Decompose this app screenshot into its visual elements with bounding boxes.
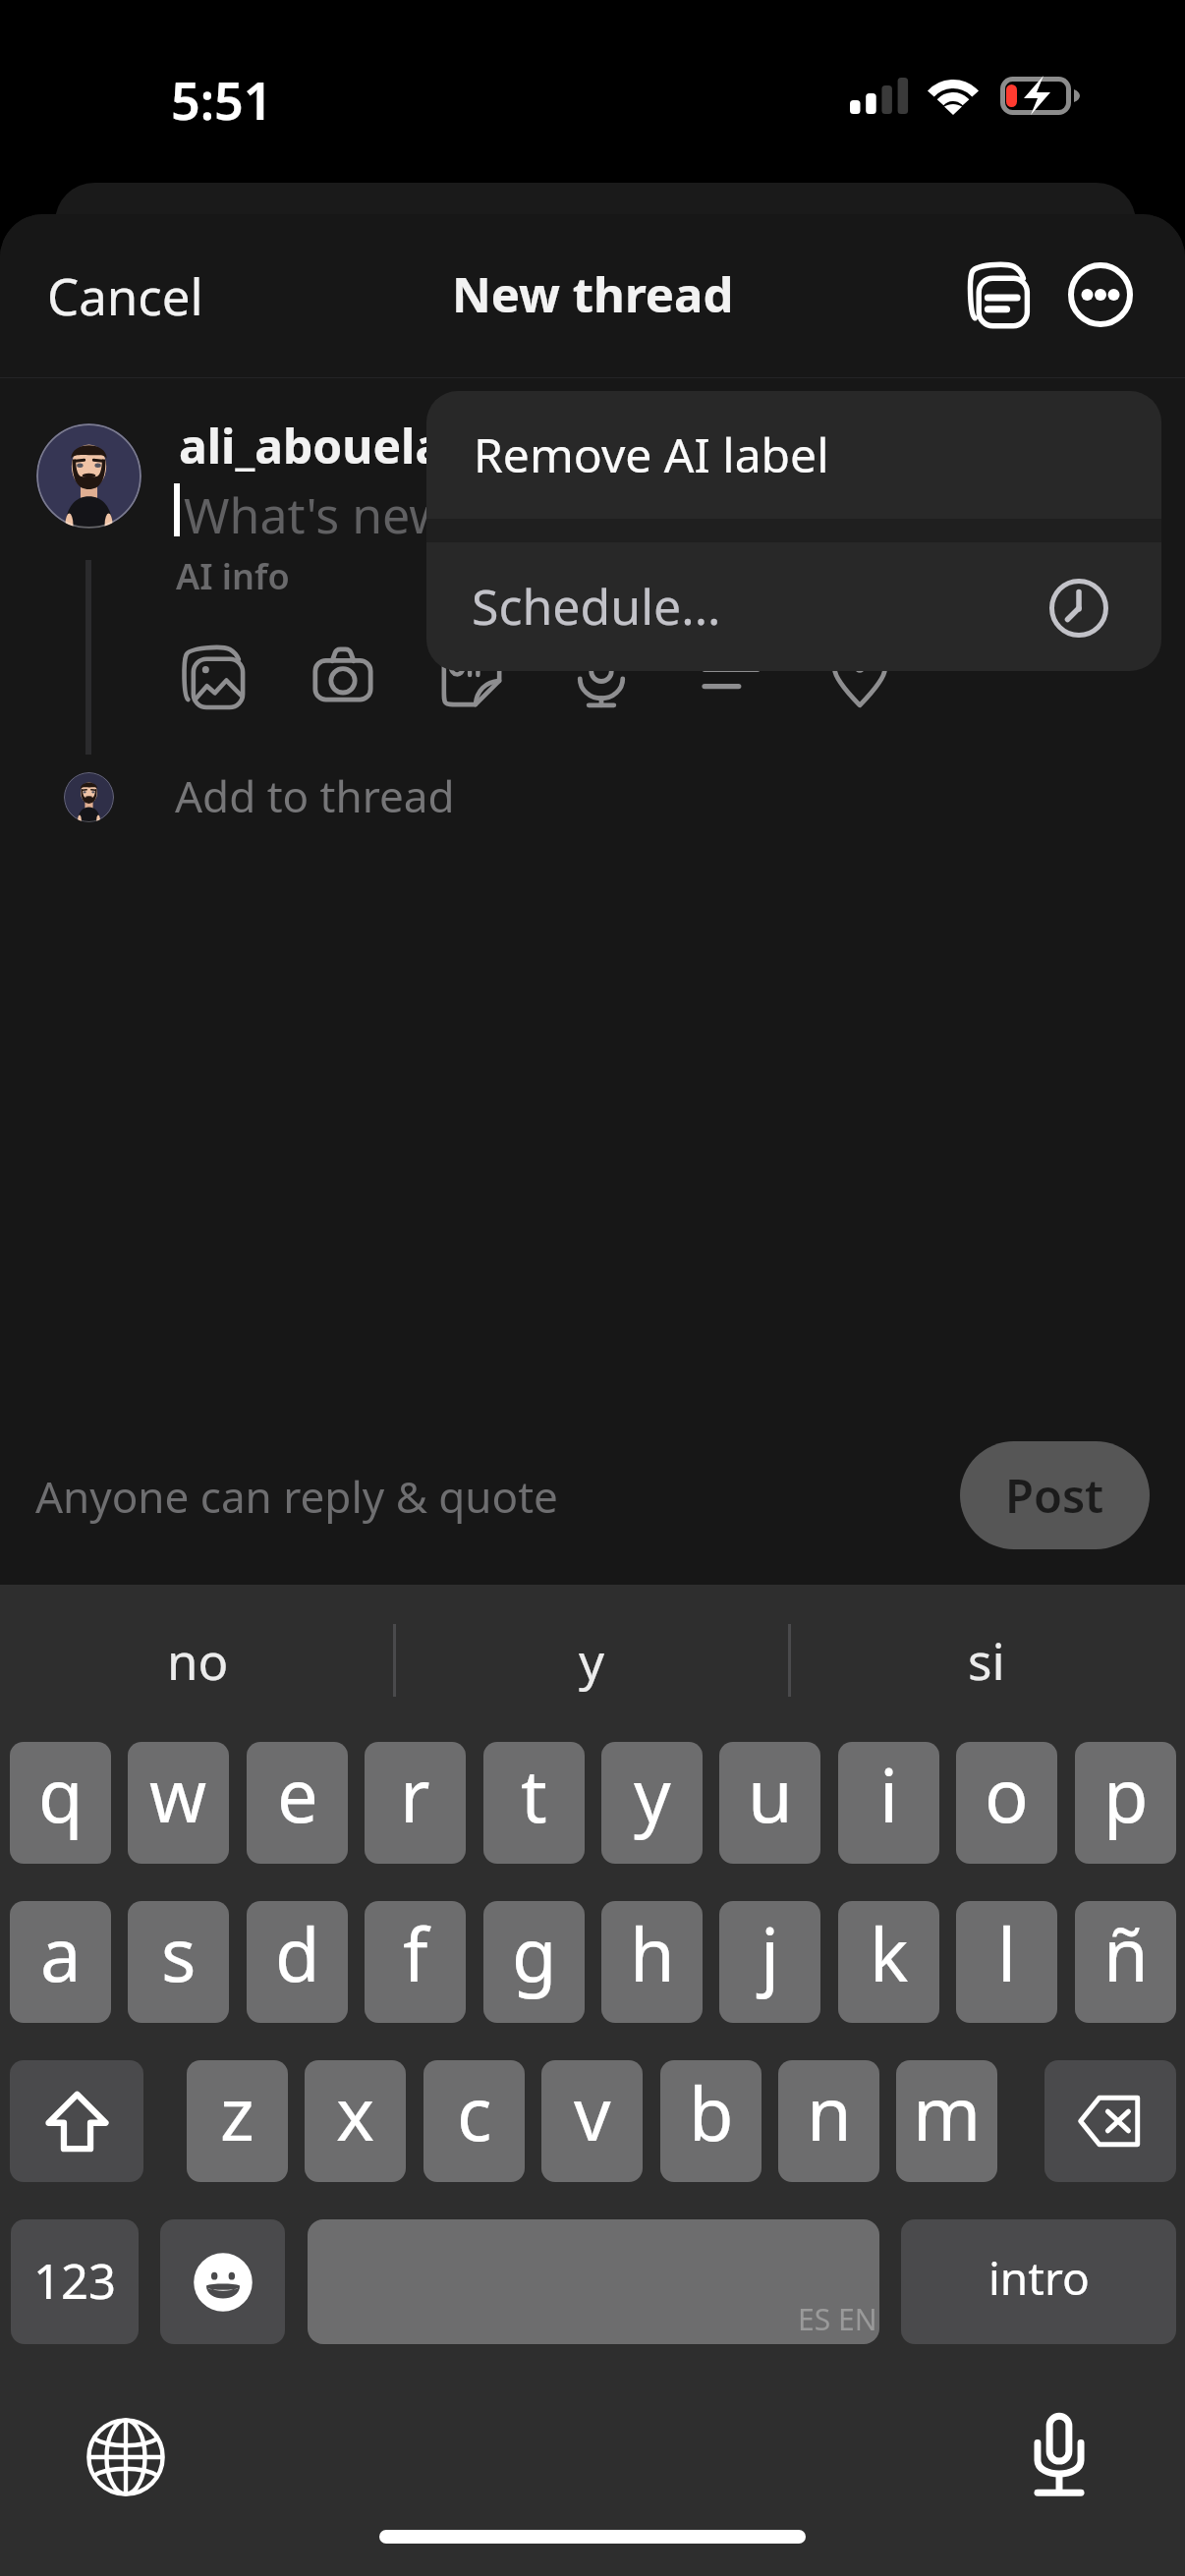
staticText: a <box>40 1904 82 2003</box>
staticText: t <box>521 1745 547 1844</box>
staticText: intro <box>988 2247 1090 2309</box>
button[interactable]: j <box>719 1901 820 2023</box>
button[interactable]: i <box>838 1742 939 1864</box>
button[interactable]: p <box>1075 1742 1176 1864</box>
staticText: 5:51 <box>171 65 273 135</box>
staticText: 123 <box>33 2248 117 2314</box>
staticText: y <box>634 1745 671 1844</box>
button[interactable]: w <box>128 1742 229 1864</box>
button[interactable]: intro <box>901 2219 1176 2344</box>
staticText: Schedule... <box>472 573 721 640</box>
staticText: j <box>761 1904 780 2003</box>
staticText: What's new? <box>184 481 471 548</box>
staticText: f <box>403 1904 428 2003</box>
button[interactable]: Add to thread <box>175 766 455 825</box>
staticText: Cancel <box>47 261 203 329</box>
staticText: n <box>807 2063 852 2162</box>
button[interactable]: a <box>10 1901 111 2023</box>
button[interactable]: f <box>365 1901 466 2023</box>
staticText: Add to thread <box>175 766 455 825</box>
staticText: si <box>968 1626 1005 1694</box>
button[interactable]: t <box>483 1742 585 1864</box>
staticText: Post <box>1005 1464 1104 1527</box>
button[interactable]: b <box>660 2060 762 2182</box>
staticText: m <box>913 2063 982 2162</box>
button[interactable]: Dictate <box>1016 2411 1102 2497</box>
button[interactable]: AI info <box>176 552 290 600</box>
button[interactable]: x <box>305 2060 406 2182</box>
button[interactable]: e <box>247 1742 348 1864</box>
button[interactable]: c <box>423 2060 525 2182</box>
staticText: x <box>336 2063 375 2162</box>
button[interactable]: y <box>601 1742 703 1864</box>
button[interactable]: d <box>247 1901 348 2023</box>
staticText: ñ <box>1103 1904 1149 2003</box>
button[interactable]: n <box>778 2060 879 2182</box>
button[interactable]: v <box>541 2060 643 2182</box>
staticText: s <box>161 1904 197 2003</box>
button[interactable]: Shift <box>10 2060 143 2182</box>
staticText: ES EN <box>798 2299 877 2339</box>
staticText: u <box>748 1745 793 1844</box>
button[interactable]: ES EN <box>308 2219 879 2344</box>
staticText: e <box>277 1745 318 1844</box>
button[interactable]: no <box>30 1585 365 1722</box>
staticText: v <box>574 2063 611 2162</box>
button[interactable]: Camera <box>300 634 386 720</box>
staticText: b <box>689 2063 734 2162</box>
button[interactable]: k <box>838 1901 939 2023</box>
staticText: k <box>870 1904 909 2003</box>
button[interactable]: z <box>187 2060 288 2182</box>
staticText: ali_abouelatta <box>179 414 513 477</box>
button[interactable]: Cancel <box>44 257 206 333</box>
button[interactable]: si <box>819 1585 1154 1722</box>
button[interactable]: Emoji <box>160 2219 285 2344</box>
button[interactable]: o <box>956 1742 1057 1864</box>
button[interactable]: Location <box>817 634 903 720</box>
staticText: z <box>220 2063 254 2162</box>
button[interactable]: 123 <box>11 2219 139 2344</box>
button[interactable]: Remove AI label <box>426 391 1161 519</box>
button[interactable]: Drafts <box>954 252 1041 338</box>
staticText: i <box>879 1745 899 1844</box>
button[interactable]: Text <box>688 634 774 720</box>
staticText: Remove AI label <box>474 422 829 486</box>
button[interactable]: Change keyboard <box>86 2418 165 2496</box>
staticText: p <box>1103 1745 1149 1844</box>
button[interactable]: Anyone can reply & quote <box>35 1467 558 1526</box>
staticText: y <box>579 1626 605 1694</box>
button[interactable]: u <box>719 1742 820 1864</box>
button[interactable]: y <box>424 1585 759 1722</box>
staticText: d <box>275 1904 320 2003</box>
staticText: g <box>512 1904 557 2003</box>
staticText: Anyone can reply & quote <box>35 1467 558 1526</box>
button[interactable]: r <box>365 1742 466 1864</box>
staticText: h <box>630 1904 675 2003</box>
button[interactable]: h <box>601 1901 703 2023</box>
staticText: New thread <box>452 261 734 327</box>
staticText: o <box>985 1745 1029 1844</box>
button[interactable]: Add photo <box>170 634 256 720</box>
staticText: q <box>38 1745 84 1844</box>
staticText: r <box>400 1745 430 1844</box>
button[interactable]: Schedule... <box>426 542 1161 671</box>
button[interactable]: l <box>956 1901 1057 2023</box>
button[interactable]: Voice <box>558 634 645 720</box>
button[interactable]: Post <box>960 1441 1150 1549</box>
staticText: AI info <box>176 552 290 600</box>
staticText: w <box>149 1745 207 1844</box>
button[interactable]: g <box>483 1901 585 2023</box>
staticText: l <box>997 1904 1017 2003</box>
button[interactable]: Backspace <box>1044 2060 1176 2182</box>
button[interactable]: m <box>896 2060 997 2182</box>
staticText: no <box>167 1626 229 1694</box>
button[interactable]: q <box>10 1742 111 1864</box>
button[interactable]: ñ <box>1075 1901 1176 2023</box>
button[interactable]: GIF <box>428 634 515 720</box>
button[interactable]: More options <box>1057 252 1144 338</box>
button[interactable]: s <box>128 1901 229 2023</box>
staticText: c <box>457 2063 492 2162</box>
